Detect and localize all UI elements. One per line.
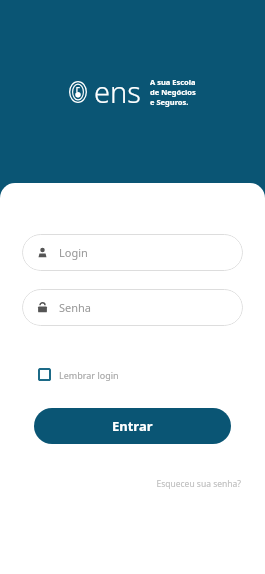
button[interactable]: Entrar (34, 408, 231, 444)
staticText: Entrar (112, 417, 153, 435)
staticText: Lembrar login (59, 369, 119, 381)
staticText: ens (94, 72, 141, 111)
staticText: Esqueceu sua senha? (156, 478, 241, 490)
staticText: de Negócios (150, 87, 196, 97)
button[interactable]: Senha field (22, 289, 243, 326)
button[interactable]: Esqueceu sua senha? (148, 474, 265, 494)
staticText: Senha (59, 300, 92, 315)
staticText: Login (59, 245, 88, 260)
staticText: e Seguros. (150, 97, 189, 107)
button[interactable]: Login field (22, 234, 243, 271)
staticText: A sua Escola (150, 77, 196, 87)
button[interactable]: Lembrar login (36, 364, 121, 385)
